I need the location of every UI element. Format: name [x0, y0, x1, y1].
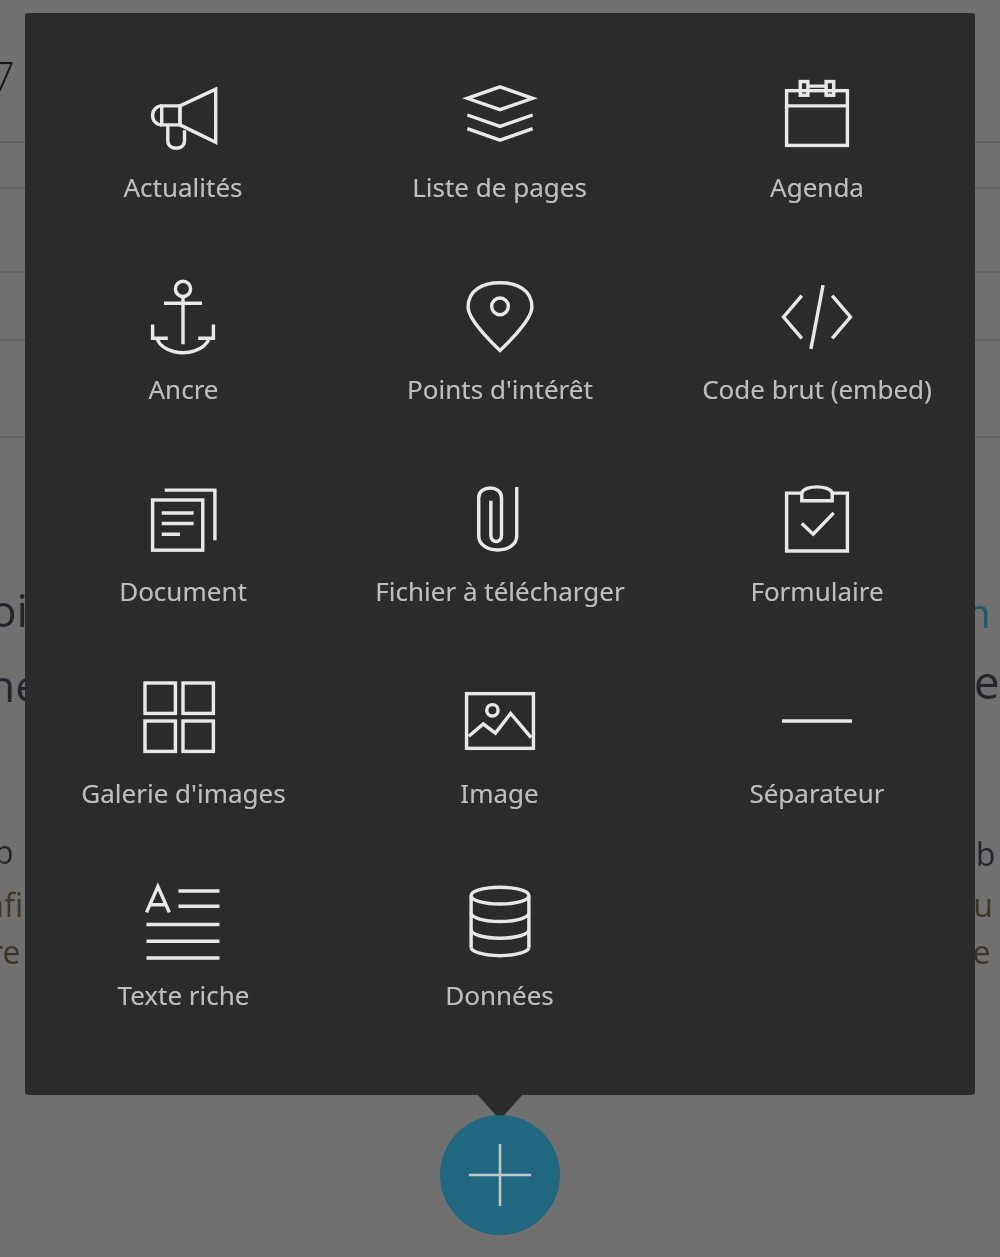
- staticText: 7: [0, 48, 15, 102]
- button[interactable]: Ajouter: [440, 1115, 560, 1235]
- staticText: s b: [952, 832, 996, 876]
- staticText: Fichier à télécharger: [375, 573, 625, 608]
- staticText: n: [966, 585, 991, 639]
- staticText: Image: [460, 775, 539, 810]
- button[interactable]: Fichier à télécharger: [341, 465, 658, 667]
- button[interactable]: Texte riche: [25, 869, 341, 1071]
- staticText: Actualités: [123, 169, 243, 204]
- button[interactable]: Séparateur: [658, 667, 975, 869]
- staticText: Document: [119, 573, 247, 608]
- staticText: oi: [0, 580, 28, 640]
- staticText: Agenda: [770, 169, 864, 204]
- button[interactable]: Données: [341, 869, 658, 1071]
- staticText: Points d'intérêt: [407, 371, 593, 406]
- staticText: Ancre: [148, 371, 219, 406]
- button[interactable]: Formulaire: [658, 465, 975, 667]
- button[interactable]: Actualités: [25, 61, 341, 263]
- staticText: Séparateur: [749, 775, 885, 810]
- button[interactable]: Document: [25, 465, 341, 667]
- staticText: afi: [0, 883, 24, 927]
- button[interactable]: Agenda: [658, 61, 975, 263]
- button[interactable]: Code brut (embed): [658, 263, 975, 465]
- button[interactable]: Liste de pages: [341, 61, 658, 263]
- staticText: re: [0, 930, 21, 974]
- staticText: le: [962, 650, 1000, 713]
- staticText: Liste de pages: [412, 169, 587, 204]
- staticText: ne: [0, 655, 41, 715]
- staticText: re: [960, 930, 991, 974]
- staticText: Texte riche: [117, 977, 250, 1012]
- staticText: Code brut (embed): [702, 371, 932, 406]
- button[interactable]: Points d'intérêt: [341, 263, 658, 465]
- staticText: b: [0, 830, 14, 874]
- staticText: Galerie d'images: [81, 775, 286, 810]
- staticText: Formulaire: [750, 573, 884, 608]
- staticText: su: [958, 883, 994, 927]
- button[interactable]: Image: [341, 667, 658, 869]
- staticText: Données: [445, 977, 554, 1012]
- button[interactable]: Ancre: [25, 263, 341, 465]
- button[interactable]: Galerie d'images: [25, 667, 341, 869]
